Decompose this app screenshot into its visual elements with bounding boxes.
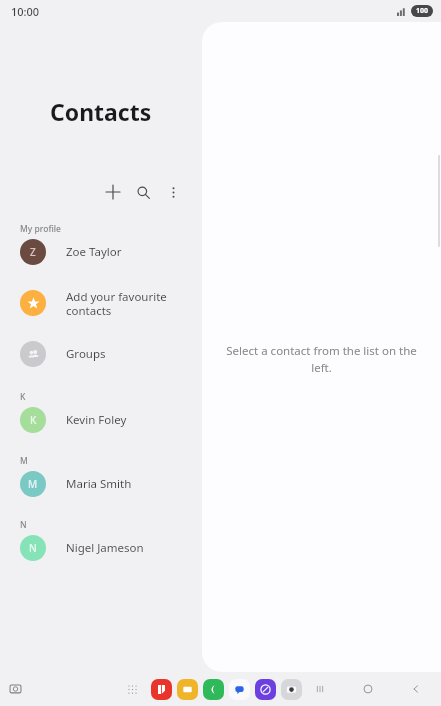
- staticText: My profile: [20, 223, 61, 235]
- button[interactable]: Back: [405, 678, 427, 700]
- button[interactable]: Messages: [226, 676, 252, 702]
- button[interactable]: Gallery: [148, 676, 174, 702]
- staticText: Maria Smith: [66, 476, 132, 492]
- button[interactable]: K: [0, 403, 202, 437]
- button[interactable]: Screenshot: [4, 678, 26, 700]
- staticText: Add your favourite contacts: [66, 289, 167, 318]
- staticText: Kevin Foley: [66, 412, 127, 428]
- button[interactable]: Add your favourite contacts: [0, 283, 202, 323]
- button[interactable]: Z: [0, 235, 202, 269]
- button[interactable]: More options: [162, 181, 184, 203]
- staticText: Select a contact from the list on the le…: [226, 343, 417, 375]
- staticText: M: [20, 455, 28, 467]
- button[interactable]: M: [0, 467, 202, 501]
- staticText: Contacts: [50, 96, 152, 127]
- staticText: N: [29, 541, 37, 555]
- staticText: K: [30, 413, 37, 427]
- staticText: Z: [30, 245, 36, 259]
- button[interactable]: Groups: [0, 337, 202, 371]
- button[interactable]: Apps: [122, 679, 142, 699]
- button[interactable]: Search: [132, 181, 154, 203]
- button[interactable]: Home: [357, 678, 379, 700]
- button[interactable]: Add contact: [102, 181, 124, 203]
- button[interactable]: Internet: [252, 676, 278, 702]
- staticText: K: [20, 391, 26, 403]
- staticText: N: [20, 519, 27, 531]
- button[interactable]: N: [0, 531, 202, 565]
- button[interactable]: Notes: [174, 676, 200, 702]
- staticText: 10:00: [11, 4, 40, 19]
- staticText: Nigel Jameson: [66, 540, 144, 556]
- button[interactable]: Camera: [278, 676, 304, 702]
- button[interactable]: Recents: [309, 678, 331, 700]
- button[interactable]: Phone: [200, 676, 226, 702]
- staticText: Zoe Taylor: [66, 244, 122, 260]
- staticText: 100: [416, 6, 429, 16]
- staticText: M: [28, 477, 38, 491]
- staticText: Groups: [66, 346, 106, 362]
